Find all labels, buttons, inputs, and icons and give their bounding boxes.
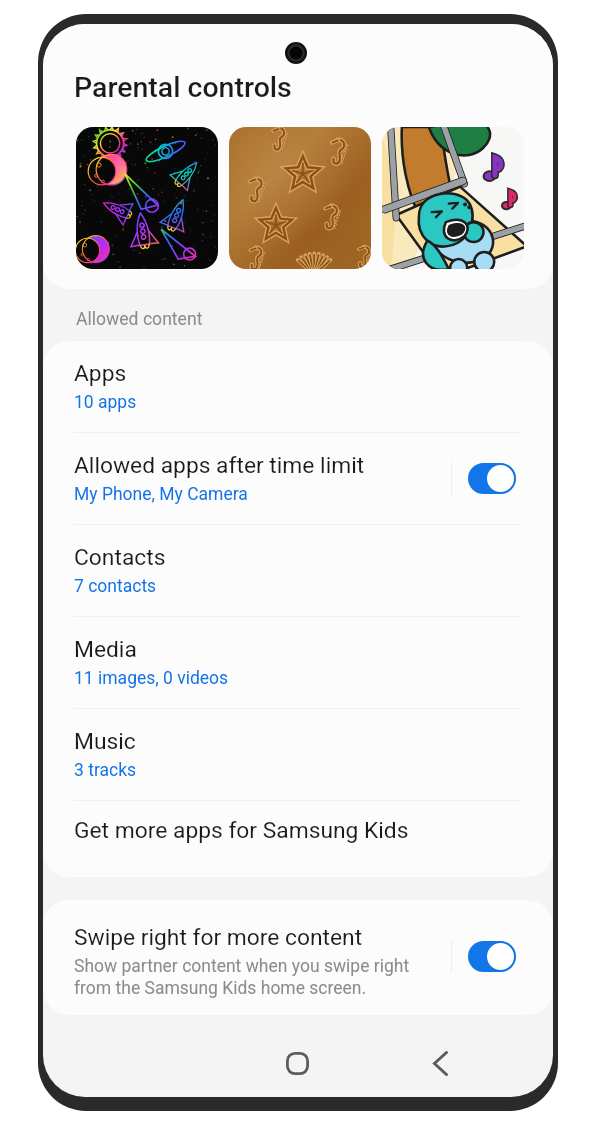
staticText: Allowed content xyxy=(76,309,203,330)
staticText: 10 apps xyxy=(74,392,137,413)
button[interactable]: Space scratch art xyxy=(76,127,218,269)
staticText: Apps xyxy=(74,360,127,387)
button[interactable]: Back xyxy=(419,1042,461,1084)
button[interactable]: Media xyxy=(43,617,553,708)
button[interactable]: Toggle xyxy=(468,941,516,972)
staticText: Show partner content when you swipe righ… xyxy=(74,956,410,998)
button[interactable]: Singing character art xyxy=(382,127,524,269)
button[interactable]: Allowed apps after time limit xyxy=(43,433,553,524)
staticText: Get more apps for Samsung Kids xyxy=(74,817,409,844)
button[interactable]: Home xyxy=(276,1042,318,1084)
button[interactable]: Apps xyxy=(43,341,553,432)
button[interactable]: Leather seahorse art xyxy=(229,127,371,269)
staticText: Allowed apps after time limit xyxy=(74,452,365,479)
staticText: Music xyxy=(74,728,136,755)
button[interactable]: Toggle xyxy=(468,463,516,494)
button[interactable]: Music xyxy=(43,709,553,800)
staticText: 3 tracks xyxy=(74,760,137,781)
button[interactable]: Get more apps for Samsung Kids xyxy=(43,801,553,859)
staticText: Swipe right for more content xyxy=(74,924,363,951)
staticText: 7 contacts xyxy=(74,576,157,597)
button[interactable]: Contacts xyxy=(43,525,553,616)
button[interactable]: Swipe right for more content xyxy=(43,900,553,1014)
staticText: Contacts xyxy=(74,544,166,571)
staticText: Parental controls xyxy=(74,71,292,104)
staticText: 11 images, 0 videos xyxy=(74,668,229,689)
staticText: Media xyxy=(74,636,137,663)
staticText: My Phone, My Camera xyxy=(74,484,248,505)
